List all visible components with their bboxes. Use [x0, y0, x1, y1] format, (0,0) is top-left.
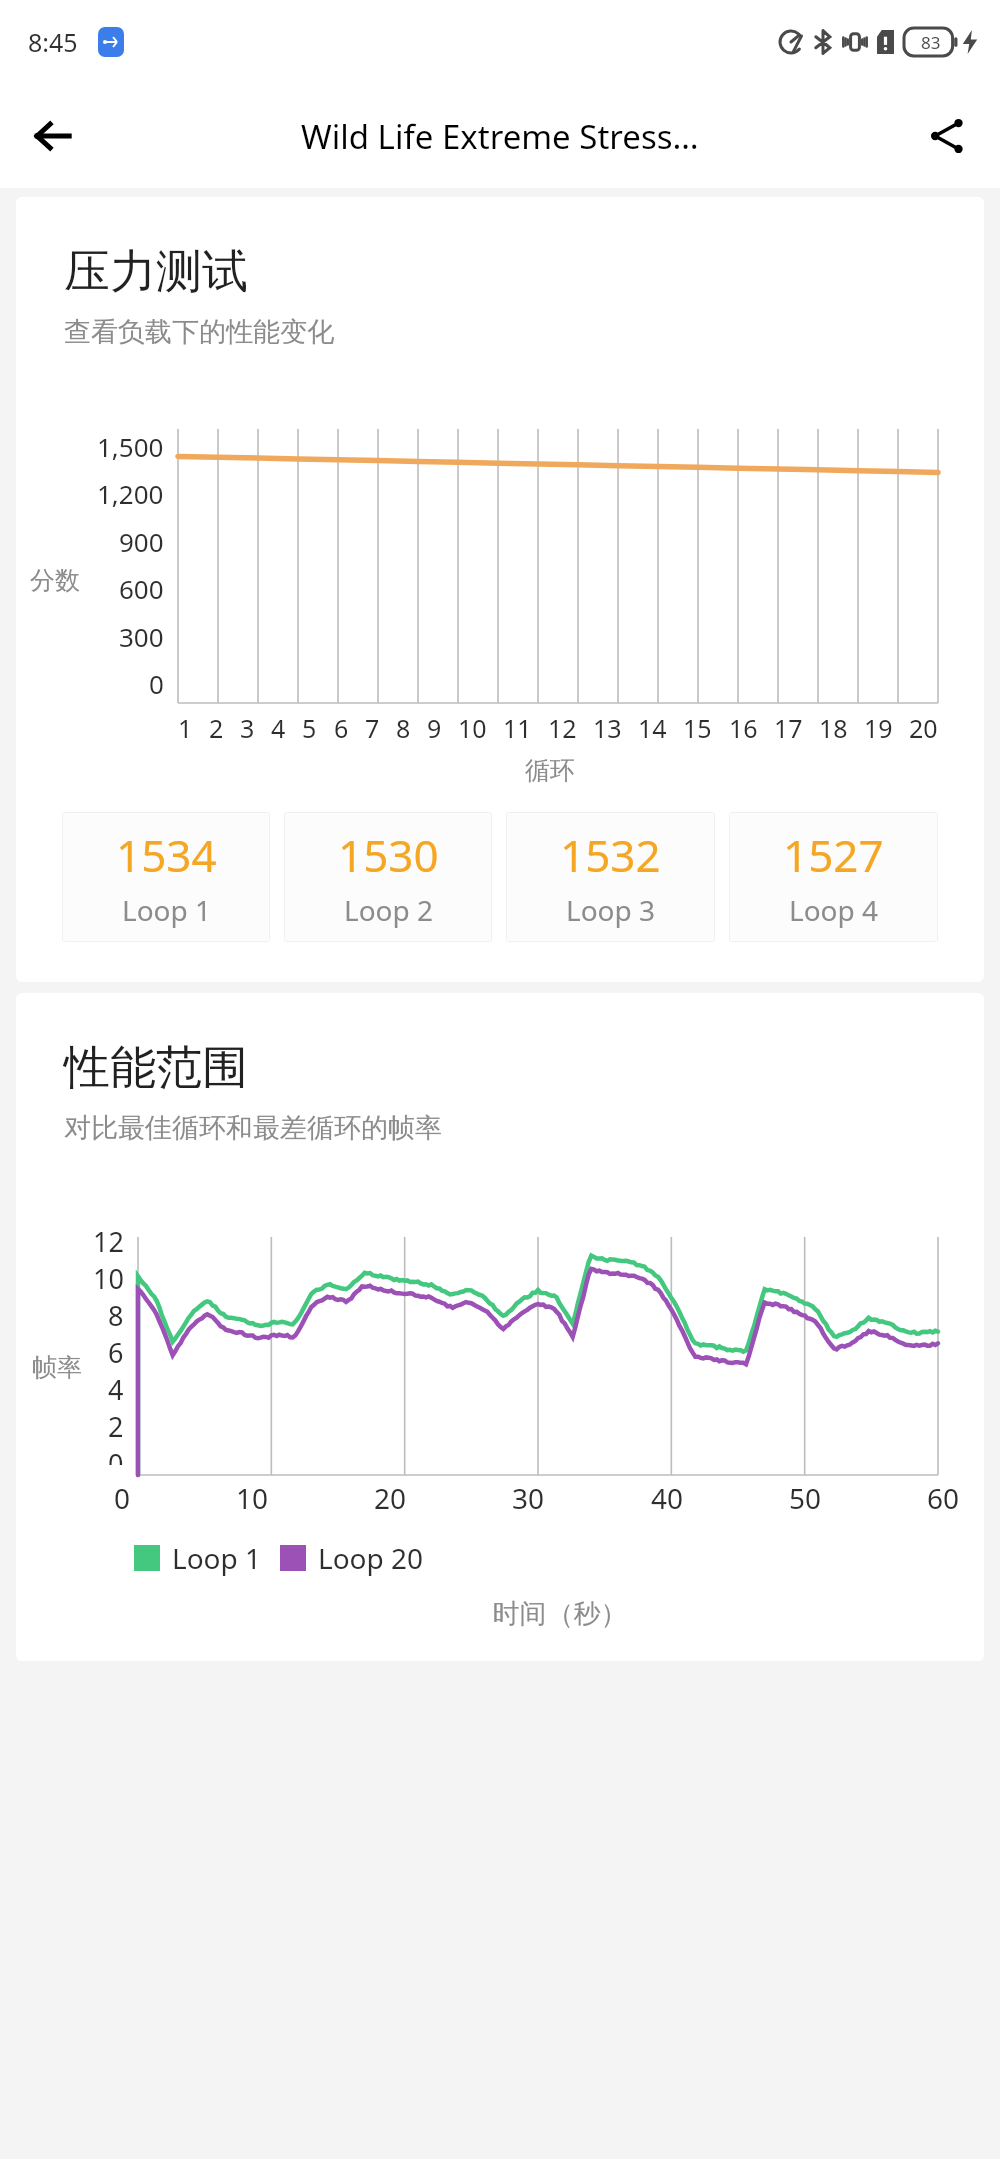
- staticText: 9: [427, 711, 442, 745]
- staticText: 12: [548, 711, 577, 745]
- staticText: 6: [108, 1334, 124, 1371]
- staticText: 1532: [560, 825, 661, 885]
- button[interactable]: 压力测试: [16, 197, 984, 982]
- staticText: 0: [108, 1445, 124, 1465]
- staticText: 10: [458, 711, 487, 745]
- staticText: Loop 20: [318, 1539, 424, 1577]
- staticText: Loop 4: [789, 891, 879, 929]
- staticText: 0: [114, 1479, 131, 1517]
- staticText: 1,500: [97, 429, 164, 464]
- staticText: 19: [864, 711, 893, 745]
- button[interactable]: 1532: [506, 812, 715, 942]
- staticText: 17: [774, 711, 803, 745]
- staticText: Loop 3: [566, 891, 656, 929]
- staticText: Loop 1: [122, 891, 212, 929]
- staticText: 2: [108, 1408, 124, 1445]
- staticText: 3: [240, 711, 255, 745]
- staticText: 4: [271, 711, 286, 745]
- staticText: 1,200: [97, 476, 164, 511]
- staticText: 16: [729, 711, 758, 745]
- staticText: 压力测试: [64, 243, 248, 301]
- staticText: 60: [927, 1479, 960, 1517]
- staticText: 循环: [116, 755, 984, 786]
- staticText: 5: [302, 711, 317, 745]
- staticText: 分数: [30, 565, 80, 596]
- staticText: Loop 2: [344, 891, 434, 929]
- staticText: 900: [119, 524, 164, 559]
- staticText: 10: [93, 1260, 124, 1297]
- staticText: 15: [683, 711, 712, 745]
- staticText: 8: [108, 1297, 124, 1334]
- button[interactable]: Share: [914, 103, 980, 169]
- staticText: 12: [93, 1223, 124, 1260]
- staticText: 10: [236, 1479, 269, 1517]
- staticText: 20: [374, 1479, 407, 1517]
- staticText: 0: [149, 666, 164, 701]
- button[interactable]: 1534: [62, 812, 270, 942]
- staticText: 查看负载下的性能变化: [64, 315, 334, 349]
- staticText: 40: [651, 1479, 684, 1517]
- button[interactable]: 1530: [284, 812, 492, 942]
- staticText: 600: [119, 571, 164, 606]
- staticText: 帧率: [32, 1352, 82, 1383]
- staticText: 11: [503, 711, 532, 745]
- staticText: 时间（秒）: [136, 1597, 984, 1631]
- button[interactable]: 1527: [729, 812, 938, 942]
- staticText: 50: [789, 1479, 822, 1517]
- staticText: 18: [819, 711, 848, 745]
- staticText: 8: [396, 711, 411, 745]
- staticText: 13: [593, 711, 622, 745]
- staticText: 1: [178, 711, 193, 745]
- staticText: 30: [512, 1479, 545, 1517]
- button[interactable]: Back: [20, 103, 86, 169]
- staticText: 8:45: [28, 25, 78, 59]
- staticText: 7: [365, 711, 380, 745]
- staticText: 14: [638, 711, 667, 745]
- staticText: 20: [909, 711, 938, 745]
- button[interactable]: 性能范围: [16, 993, 984, 1661]
- staticText: 性能范围: [64, 1039, 248, 1097]
- staticText: 83: [921, 31, 941, 54]
- staticText: 6: [334, 711, 349, 745]
- staticText: 2: [209, 711, 224, 745]
- staticText: 4: [108, 1371, 124, 1408]
- staticText: Wild Life Extreme Stress…: [301, 114, 699, 159]
- staticText: 300: [119, 619, 164, 654]
- staticText: 对比最佳循环和最差循环的帧率: [64, 1111, 442, 1145]
- staticText: 1534: [116, 825, 217, 885]
- staticText: Loop 1: [172, 1539, 262, 1577]
- staticText: 1527: [783, 825, 884, 885]
- staticText: 1530: [338, 825, 439, 885]
